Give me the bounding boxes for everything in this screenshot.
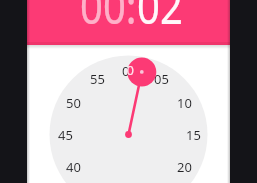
- staticText: 40: [66, 158, 81, 176]
- staticText: 00: [127, 61, 134, 79]
- staticText: 05: [154, 70, 169, 88]
- staticText: 02: [137, 0, 183, 26]
- staticText: 10: [177, 94, 192, 112]
- staticText: 55: [90, 70, 105, 88]
- button[interactable]: 00:: [27, 0, 230, 45]
- staticText: 20: [177, 158, 192, 176]
- staticText: 00: [122, 62, 137, 80]
- staticText: 50: [66, 94, 81, 112]
- staticText: 00:: [80, 0, 137, 26]
- staticText: 15: [186, 126, 201, 144]
- staticText: 45: [58, 126, 73, 144]
